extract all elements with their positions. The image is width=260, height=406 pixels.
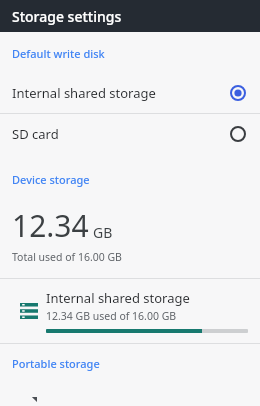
- staticText: Portable storage: [12, 356, 100, 371]
- staticText: Internal shared storage: [46, 289, 190, 307]
- staticText: SD card: [12, 125, 59, 143]
- staticText: GB: [93, 223, 113, 242]
- staticText: 12.34 GB used of 16.00 GB: [46, 309, 177, 323]
- staticText: Internal shared storage: [12, 84, 156, 102]
- staticText: 12.34: [12, 205, 89, 246]
- button[interactable]: Internal shared storage: [0, 73, 260, 113]
- button[interactable]: SD card: [0, 387, 260, 406]
- staticText: Default write disk: [12, 46, 105, 61]
- button[interactable]: SD card: [0, 114, 260, 154]
- staticText: Device storage: [12, 172, 90, 187]
- staticText: Storage settings: [12, 7, 122, 26]
- staticText: Total used of 16.00 GB: [12, 250, 122, 264]
- button[interactable]: Internal shared storage: [0, 279, 260, 343]
